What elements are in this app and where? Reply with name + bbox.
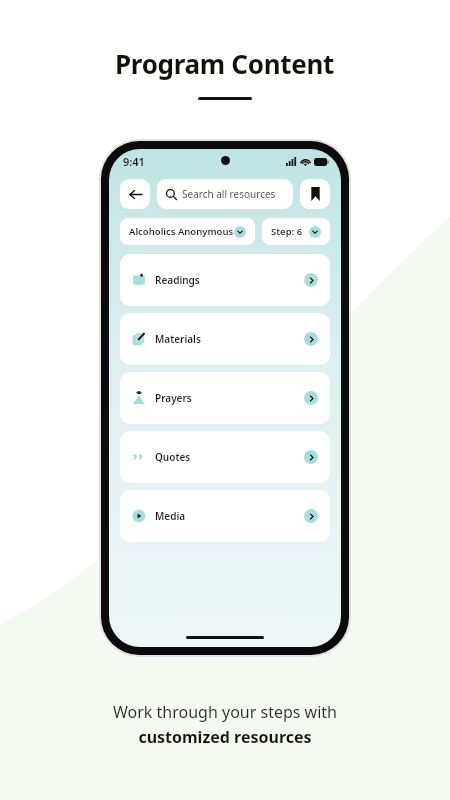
- staticText: Readings: [155, 273, 200, 287]
- staticText: Alcoholics Anonymous: [129, 225, 234, 238]
- staticText: Media: [155, 509, 186, 523]
- button[interactable]: Bookmarks: [300, 179, 330, 209]
- staticText: Materials: [155, 332, 201, 346]
- button[interactable]: Materials: [120, 313, 330, 365]
- staticText: Search all resources: [182, 187, 276, 201]
- staticText: Work through your steps with: [113, 701, 337, 723]
- button[interactable]: Alcoholics Anonymous: [120, 218, 255, 245]
- staticText: Prayers: [155, 391, 192, 405]
- staticText: customized resources: [138, 726, 312, 748]
- button[interactable]: Readings: [120, 254, 330, 306]
- button[interactable]: Back: [120, 179, 150, 209]
- staticText: 9:41: [123, 154, 145, 169]
- staticText: Quotes: [155, 450, 191, 464]
- button[interactable]: Quotes: [120, 431, 330, 483]
- button[interactable]: Prayers: [120, 372, 330, 424]
- button[interactable]: Search all resources: [157, 179, 293, 209]
- button[interactable]: Media: [120, 490, 330, 542]
- staticText: Step: 6: [271, 225, 303, 238]
- button[interactable]: Step: 6: [262, 218, 330, 245]
- staticText: Program Content: [115, 46, 335, 81]
